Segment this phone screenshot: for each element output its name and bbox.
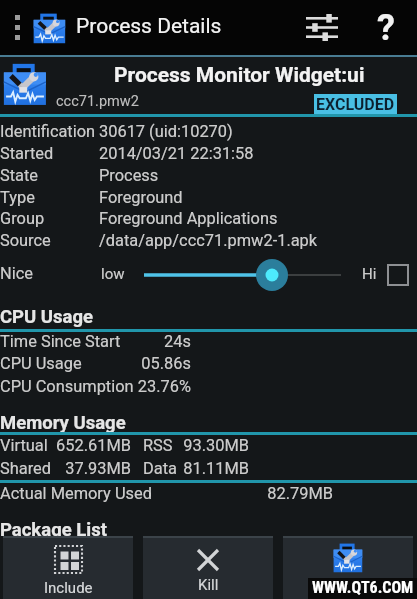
staticText: 30617 (uid:10270) [99, 122, 233, 141]
staticText: Process Monitor Widget:ui [114, 63, 365, 88]
staticText: 05.86s [0, 354, 191, 373]
staticText: Nice [0, 264, 33, 283]
staticText: /data/app/ccc71.pmw2-1.apk [99, 231, 318, 250]
staticText: 23.76% [0, 377, 191, 396]
button[interactable]: Nice checkbox [388, 265, 408, 285]
staticText: Package List [0, 519, 107, 541]
staticText: Shared [0, 459, 52, 478]
staticText: Source [0, 231, 51, 250]
staticText: 37.93MB [0, 459, 131, 478]
staticText: Time Since Start [0, 332, 121, 351]
staticText: Actual Memory Used [0, 484, 152, 503]
staticText: State [0, 166, 39, 185]
staticText: 24s [0, 332, 191, 351]
staticText: WWW.QT6.COM [312, 578, 414, 597]
button[interactable]: Include processes [3, 536, 133, 599]
button[interactable]: Nice level slider [144, 258, 341, 292]
staticText: 652.61MB [0, 436, 131, 455]
staticText: Process [99, 166, 159, 185]
button[interactable]: Help [360, 0, 412, 55]
staticText: RSS [143, 436, 173, 455]
staticText: ccc71.pmw2 [56, 93, 139, 110]
button[interactable]: Process monitor [283, 536, 413, 599]
staticText: Virtual [0, 436, 48, 455]
staticText: Started [0, 144, 54, 163]
staticText: Hi [362, 265, 377, 283]
staticText: 2014/03/21 22:31:58 [99, 144, 254, 163]
staticText: CPU Usage [0, 306, 93, 328]
staticText: Data [143, 459, 177, 478]
staticText: CPU Consumption [0, 377, 134, 396]
staticText: Kill [198, 576, 219, 594]
button[interactable]: Kill process [143, 536, 273, 599]
staticText: Process Details [76, 14, 222, 39]
button[interactable]: More options [4, 0, 31, 55]
staticText: 81.11MB [0, 459, 249, 478]
staticText: Type [0, 188, 35, 207]
staticText: CPU Usage [0, 354, 82, 373]
staticText: 93.30MB [0, 436, 249, 455]
staticText: Memory Usage [0, 412, 126, 434]
staticText: Include [44, 579, 93, 597]
staticText: Foreground [99, 188, 183, 207]
staticText: ? [377, 7, 395, 49]
staticText: Foreground Applications [99, 209, 278, 228]
staticText: Identification [0, 122, 96, 141]
staticText: EXCLUDED [316, 95, 395, 114]
staticText: 82.79MB [0, 484, 333, 503]
staticText: Group [0, 209, 45, 228]
button[interactable]: Settings [296, 0, 348, 55]
staticText: low [101, 265, 125, 283]
